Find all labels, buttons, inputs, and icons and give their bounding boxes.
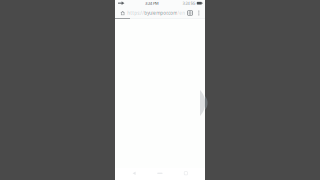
button[interactable]: Home — [117, 8, 128, 18]
button[interactable]: Back — [129, 169, 140, 177]
staticText: byuiempor.com — [144, 10, 177, 16]
staticText: 3:24 PM — [145, 0, 159, 6]
staticText: /en — [177, 10, 185, 16]
button[interactable]: Tabs — [185, 8, 195, 18]
staticText: 3:24 — [183, 0, 190, 6]
button[interactable]: More options — [195, 8, 202, 18]
button[interactable]: Recent apps — [180, 169, 191, 177]
button[interactable]: https:// — [128, 8, 185, 18]
staticText: https:// — [127, 10, 144, 16]
button[interactable]: Home — [153, 169, 167, 177]
staticText: 5G — [191, 0, 196, 6]
